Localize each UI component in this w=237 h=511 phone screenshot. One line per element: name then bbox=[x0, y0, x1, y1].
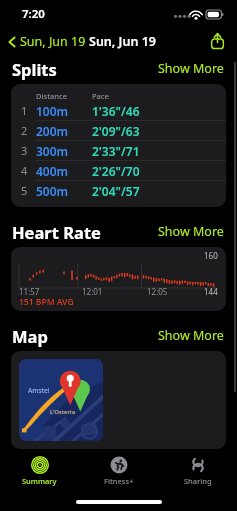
staticText: Summary bbox=[22, 476, 57, 486]
staticText: 144 bbox=[204, 286, 218, 297]
staticText: Splits bbox=[12, 58, 57, 80]
staticText: L'Osteria bbox=[50, 408, 76, 416]
button[interactable]: Distance bbox=[11, 84, 226, 207]
staticText: 2 bbox=[21, 123, 36, 138]
staticText: 500m bbox=[36, 183, 92, 199]
button[interactable]: Share bbox=[206, 30, 228, 52]
staticText: 12:01 bbox=[82, 286, 103, 297]
staticText: 4 bbox=[21, 163, 36, 178]
staticText: 2'33"/71 bbox=[92, 143, 140, 159]
staticText: 3 bbox=[21, 143, 36, 158]
button[interactable]: Sharing bbox=[158, 449, 237, 493]
staticText: 100m bbox=[36, 103, 92, 119]
staticText: Heart Rate bbox=[12, 221, 101, 243]
staticText: 1'36"/46 bbox=[92, 103, 140, 119]
button[interactable]: Show More bbox=[156, 57, 226, 80]
staticText: 400m bbox=[36, 163, 92, 179]
button[interactable]: Fitness+ bbox=[79, 449, 158, 493]
staticText: Sharing bbox=[184, 476, 212, 486]
staticText: Amstel bbox=[28, 386, 50, 395]
staticText: Sun, Jun 19 bbox=[89, 33, 156, 50]
staticText: Show More bbox=[158, 327, 224, 344]
staticText: 7:20 bbox=[22, 6, 45, 22]
button[interactable]: Summary bbox=[0, 449, 79, 493]
staticText: 200m bbox=[36, 123, 92, 139]
staticText: 151 BPM AVG bbox=[19, 296, 74, 308]
button[interactable]: 160 bbox=[11, 247, 226, 311]
button[interactable]: Show More bbox=[156, 324, 226, 347]
staticText: 11:57 bbox=[19, 286, 40, 297]
staticText: 2'09"/63 bbox=[92, 123, 140, 139]
staticText: Show More bbox=[158, 60, 224, 77]
staticText: 300m bbox=[36, 143, 92, 159]
staticText: 2'04"/57 bbox=[92, 183, 140, 199]
staticText: Fitness+ bbox=[104, 476, 134, 486]
button[interactable]: Sun, Jun 19 bbox=[6, 31, 87, 52]
staticText: 2'26"/70 bbox=[92, 163, 140, 179]
staticText: Distance bbox=[36, 91, 92, 101]
staticText: Map bbox=[12, 325, 48, 347]
staticText: Pace bbox=[92, 91, 109, 101]
staticText: 12:05 bbox=[147, 286, 168, 297]
staticText: 5 bbox=[21, 183, 36, 198]
staticText: Sun, Jun 19 bbox=[20, 33, 86, 50]
staticText: 1 bbox=[21, 103, 36, 118]
staticText: Show More bbox=[158, 223, 224, 240]
button[interactable]: Show More bbox=[156, 220, 226, 243]
staticText: 160 bbox=[204, 250, 218, 261]
button[interactable]: Amstel bbox=[11, 351, 226, 449]
